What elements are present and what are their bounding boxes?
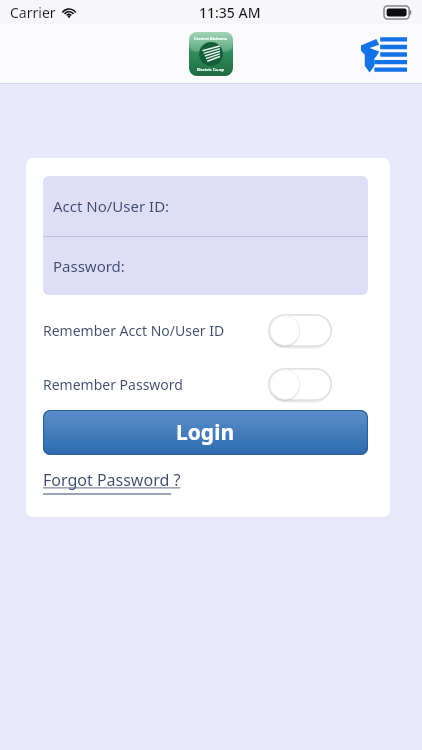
other: Toggle off <box>268 368 332 401</box>
button[interactable]: Remember Acct No/User ID <box>26 313 390 347</box>
button[interactable]: Login <box>43 410 368 455</box>
button[interactable]: Menu <box>360 33 408 75</box>
staticText: Login <box>176 418 235 447</box>
other: Toggle off <box>268 314 332 347</box>
staticText: 11:35 AM <box>199 3 261 22</box>
staticText: Remember Acct No/User ID <box>43 321 225 340</box>
button[interactable]: Remember Password <box>26 367 390 401</box>
staticText: Central Alabama <box>194 36 228 41</box>
staticText: Carrier <box>10 3 56 22</box>
staticText: Remember Password <box>43 375 183 394</box>
staticText: Forgot Password ? <box>43 469 181 491</box>
staticText: Acct No/User ID: <box>53 196 170 216</box>
button[interactable]: Password: <box>43 237 368 295</box>
staticText: Electric Co-op <box>197 67 225 72</box>
button[interactable]: Forgot Password ? <box>43 469 181 495</box>
button[interactable]: Central Alabama Electric Co-op logo <box>189 32 233 76</box>
button[interactable]: Acct No/User ID: <box>43 176 368 236</box>
staticText: Password: <box>53 256 125 276</box>
